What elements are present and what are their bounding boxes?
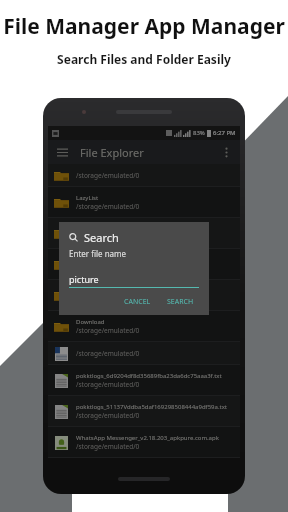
button[interactable]: pokktlogs_6d9204df8d35689fba23da6dc75aaa… bbox=[48, 365, 240, 395]
staticText: Search bbox=[84, 230, 119, 245]
button[interactable]: System bbox=[48, 218, 240, 248]
staticText: /storage/emulated/0 bbox=[76, 326, 140, 335]
staticText: /storage/emulated/0 bbox=[76, 380, 140, 389]
button[interactable]: Download bbox=[48, 311, 240, 341]
staticText: pokktlogs_6d9204df8d35689fba23da6dc75aaa… bbox=[76, 372, 222, 380]
button[interactable]: WhatsApp Messenger_v2.18.203_apkpure.com… bbox=[48, 427, 240, 457]
staticText: /storage/emulated/0 bbox=[76, 171, 140, 180]
button[interactable]: /storage/emulated/0 bbox=[48, 164, 240, 186]
staticText: pokktlogs_51137Vddba5daf169298508444a9df… bbox=[76, 403, 228, 411]
staticText: File Explorer bbox=[80, 145, 144, 160]
staticText: /storage/emulated/0 bbox=[76, 233, 140, 242]
staticText: CANCEL bbox=[124, 297, 151, 307]
staticText: picture bbox=[69, 273, 99, 285]
button[interactable]: More options bbox=[218, 144, 234, 160]
staticText: 6:27 PM bbox=[213, 129, 236, 137]
staticText: Download bbox=[76, 318, 105, 326]
button[interactable]: CANCEL bbox=[119, 295, 156, 309]
button[interactable]: pictures bbox=[48, 249, 240, 279]
button[interactable]: Open navigation menu bbox=[54, 144, 70, 160]
staticText: /storage/emulated/0 bbox=[76, 349, 140, 358]
button[interactable]: SEARCH bbox=[162, 295, 199, 309]
staticText: /storage/emulated/0 bbox=[76, 295, 140, 304]
button[interactable]: Music bbox=[48, 280, 240, 310]
staticText: Enter file name bbox=[69, 248, 127, 259]
button[interactable]: LazyList bbox=[48, 187, 240, 217]
staticText: 83% bbox=[193, 129, 205, 137]
staticText: WhatsApp Messenger_v2.18.203_apkpure.com… bbox=[76, 434, 219, 442]
staticText: pictures bbox=[76, 256, 99, 264]
staticText: Search Files and Folder Easily bbox=[57, 51, 231, 67]
staticText: SEARCH bbox=[167, 297, 194, 307]
staticText: /storage/emulated/0 bbox=[76, 202, 140, 211]
button[interactable]: /storage/emulated/0 bbox=[48, 342, 240, 364]
staticText: Music bbox=[76, 287, 93, 295]
staticText: File Manager App Manager bbox=[3, 12, 285, 41]
staticText: /storage/emulated/0 bbox=[76, 411, 140, 420]
staticText: LazyList bbox=[76, 194, 99, 202]
staticText: /storage/emulated/0 bbox=[76, 442, 140, 451]
button[interactable]: pokktlogs_51137Vddba5daf169298508444a9df… bbox=[48, 396, 240, 426]
